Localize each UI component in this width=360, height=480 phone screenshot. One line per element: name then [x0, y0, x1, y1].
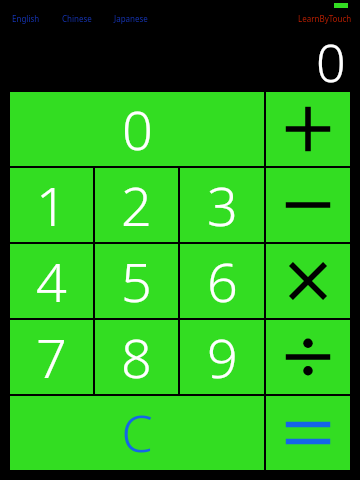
button[interactable]: C — [10, 396, 264, 470]
button[interactable]: 9 — [180, 320, 264, 394]
staticText: 6 — [207, 244, 238, 318]
staticText: Chinese — [62, 13, 92, 24]
staticText: 2 — [121, 168, 152, 242]
button[interactable]: 0 — [10, 92, 264, 166]
button[interactable]: Plus — [266, 92, 350, 166]
button[interactable]: 1 — [10, 168, 93, 242]
button[interactable]: 5 — [95, 244, 178, 318]
staticText: 7 — [36, 320, 67, 394]
button[interactable]: Chinese — [62, 13, 114, 24]
button[interactable]: 4 — [10, 244, 93, 318]
staticText: 8 — [121, 320, 152, 394]
button[interactable]: Multiply — [266, 244, 350, 318]
button[interactable]: Equals — [266, 396, 350, 470]
button[interactable]: English — [12, 13, 62, 24]
button[interactable]: Divide — [266, 320, 350, 394]
staticText: English — [12, 13, 40, 24]
button[interactable]: Japanese — [114, 13, 170, 24]
staticText: 1 — [36, 168, 67, 242]
staticText: 0 — [316, 26, 346, 92]
button[interactable]: 3 — [180, 168, 264, 242]
button[interactable]: Minus — [266, 168, 350, 242]
staticText: 9 — [207, 320, 238, 394]
staticText: 5 — [121, 244, 152, 318]
button[interactable]: 6 — [180, 244, 264, 318]
staticText: C — [121, 399, 153, 467]
staticText: LearnByTouch — [298, 13, 352, 24]
button[interactable]: 2 — [95, 168, 178, 242]
staticText: Japanese — [114, 13, 148, 24]
staticText: 3 — [207, 168, 238, 242]
staticText: 0 — [122, 92, 153, 166]
button[interactable]: 8 — [95, 320, 178, 394]
staticText: 4 — [36, 244, 67, 318]
button[interactable]: 7 — [10, 320, 93, 394]
button[interactable]: LearnByTouch — [298, 13, 352, 24]
